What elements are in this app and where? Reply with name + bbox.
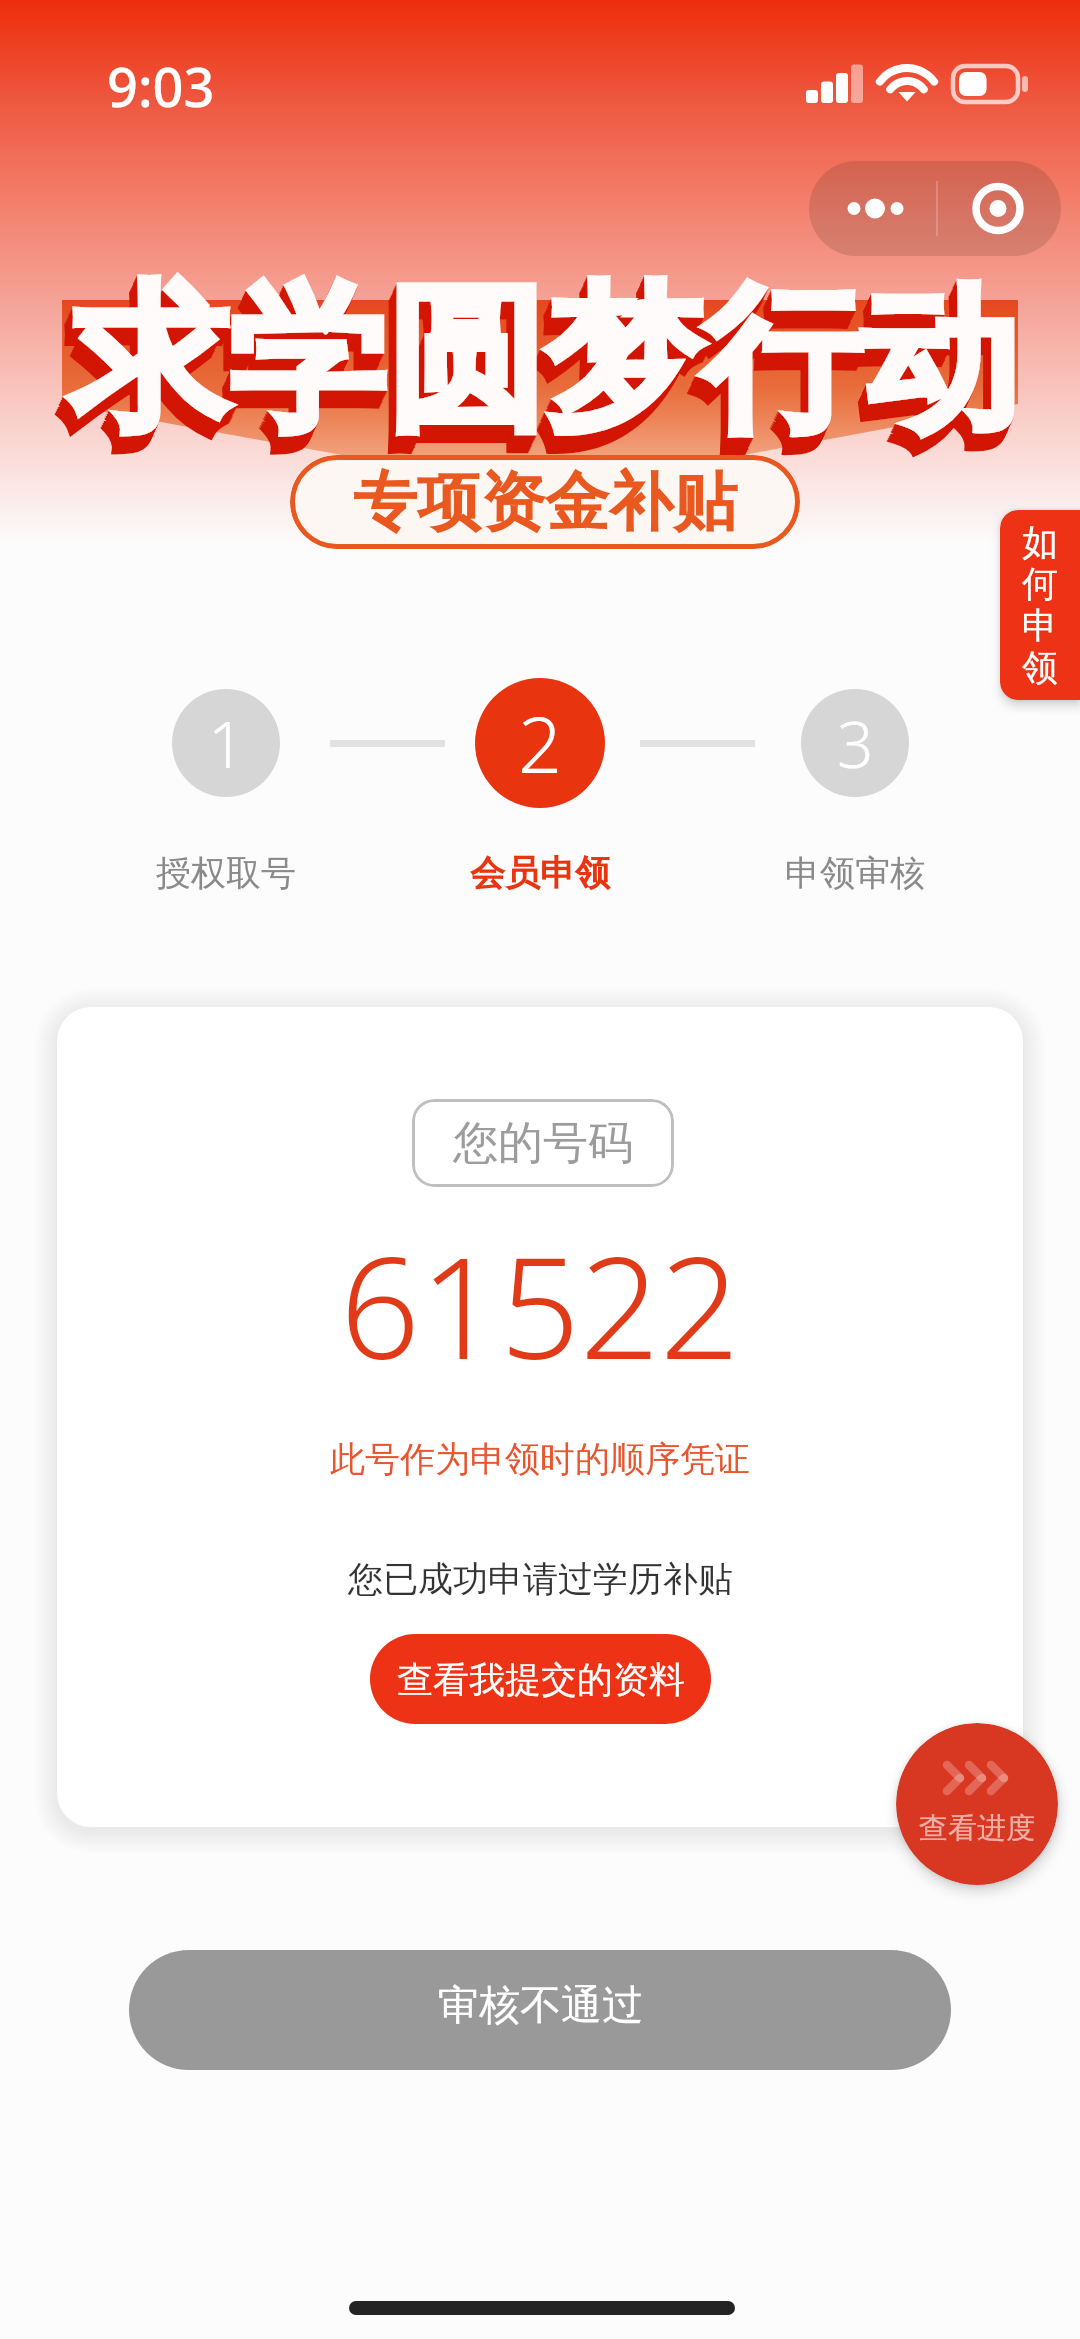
staticText: 求学圆梦行动 (68, 266, 1016, 465)
staticText: 9:03 (107, 49, 215, 123)
staticText: 求学圆梦行动 (64, 275, 1012, 474)
staticText: 求学圆梦行动 (63, 277, 1011, 476)
staticText: 如何申领 (1020, 520, 1060, 691)
staticText: 求学圆梦行动 (62, 280, 1010, 479)
staticText: 求学圆梦行动 (70, 262, 1018, 461)
button[interactable]: 授权取号 (172, 689, 280, 797)
button[interactable]: 查看进度 (896, 1723, 1058, 1885)
button[interactable]: 您的号码 (412, 1099, 674, 1187)
staticText: 求学圆梦行动 (64, 276, 1012, 475)
staticText: 1 (208, 700, 245, 787)
staticText: 求学圆梦行动 (66, 270, 1014, 469)
staticText: 授权取号 (156, 851, 296, 895)
staticText: 审核不通过 (438, 1980, 643, 2032)
staticText: 求学圆梦行动 (62, 279, 1010, 478)
staticText: 您已成功申请过学历补贴 (348, 1557, 733, 1601)
staticText: 求学圆梦行动 (65, 273, 1013, 472)
staticText: 求学圆梦行动 (67, 268, 1015, 467)
staticText: 求学圆梦行动 (68, 267, 1016, 466)
button[interactable]: 申领审核 (801, 689, 909, 797)
staticText: 求学圆梦行动 (65, 274, 1013, 473)
staticText: 求学圆梦行动 (69, 264, 1017, 463)
staticText: 61522 (340, 1209, 740, 1400)
staticText: 求学圆梦行动 (67, 269, 1015, 468)
button[interactable]: 会员申领 (390, 843, 690, 903)
staticText: 申领审核 (785, 851, 925, 895)
button[interactable]: 申领审核 (705, 843, 1005, 903)
staticText: 此号作为申领时的顺序凭证 (330, 1437, 750, 1481)
staticText: 2 (518, 691, 562, 796)
staticText: 求学圆梦行动 (69, 265, 1017, 464)
staticText: 专项资金补贴 (353, 462, 737, 543)
button[interactable]: 会员申领 (475, 678, 605, 808)
staticText: 您的号码 (453, 1115, 633, 1172)
staticText: 求学圆梦行动 (66, 271, 1014, 470)
button[interactable]: 审核不通过 (129, 1950, 951, 2070)
staticText: 求学圆梦行动 (63, 278, 1011, 477)
button[interactable]: 查看我提交的资料 (370, 1634, 711, 1724)
other: 信号 (806, 65, 863, 103)
staticText: 求学圆梦行动 (70, 263, 1018, 462)
staticText: 查看我提交的资料 (397, 1657, 685, 1702)
button[interactable]: 授权取号 (76, 843, 376, 903)
other: 电量 (951, 65, 1029, 103)
other: Wi-Fi (880, 65, 934, 103)
button[interactable]: 专项资金补贴 (290, 455, 800, 549)
button[interactable]: 如何申领 (1000, 510, 1080, 700)
staticText: 会员申领 (470, 851, 610, 895)
staticText: 查看进度 (919, 1810, 1035, 1847)
staticText: 3 (837, 700, 874, 787)
button[interactable]: 关闭 (938, 161, 1061, 256)
button[interactable]: 更多 (809, 161, 935, 256)
